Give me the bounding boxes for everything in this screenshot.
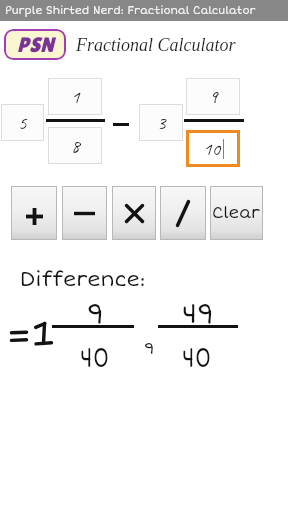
staticText: 9 (209, 85, 218, 109)
staticText: Clear (212, 203, 261, 223)
button[interactable]: 10 (186, 130, 240, 167)
staticText: 1 (71, 85, 80, 109)
button[interactable]: 9 (186, 78, 240, 115)
staticText: 3 (157, 111, 166, 135)
button[interactable]: Subtract (62, 186, 107, 240)
staticText: 40 (182, 341, 211, 375)
staticText: 40 (80, 341, 109, 375)
staticText: Purple Shirted Nerd: Fractional Calculat… (5, 4, 256, 17)
staticText: Difference: (20, 267, 146, 292)
staticText: 49 (182, 297, 214, 331)
button[interactable]: Add (11, 186, 57, 240)
staticText: Fractional Calculator (76, 35, 236, 55)
button[interactable]: Purple Shirted Nerd logo (4, 29, 66, 60)
button[interactable]: 8 (48, 127, 102, 164)
staticText: 5 (18, 111, 27, 135)
button[interactable]: Multiply (112, 186, 156, 240)
button[interactable]: Clear (210, 186, 263, 240)
staticText: 10 (203, 137, 221, 161)
staticText: 8 (71, 134, 80, 158)
button[interactable]: Divide (160, 186, 206, 240)
button[interactable]: 1 (48, 78, 102, 115)
staticText: PSN (17, 33, 54, 57)
button[interactable]: 5 (1, 104, 44, 141)
staticText: 9 (87, 297, 104, 331)
staticText: 9 (144, 339, 155, 359)
button[interactable]: 3 (139, 104, 183, 141)
